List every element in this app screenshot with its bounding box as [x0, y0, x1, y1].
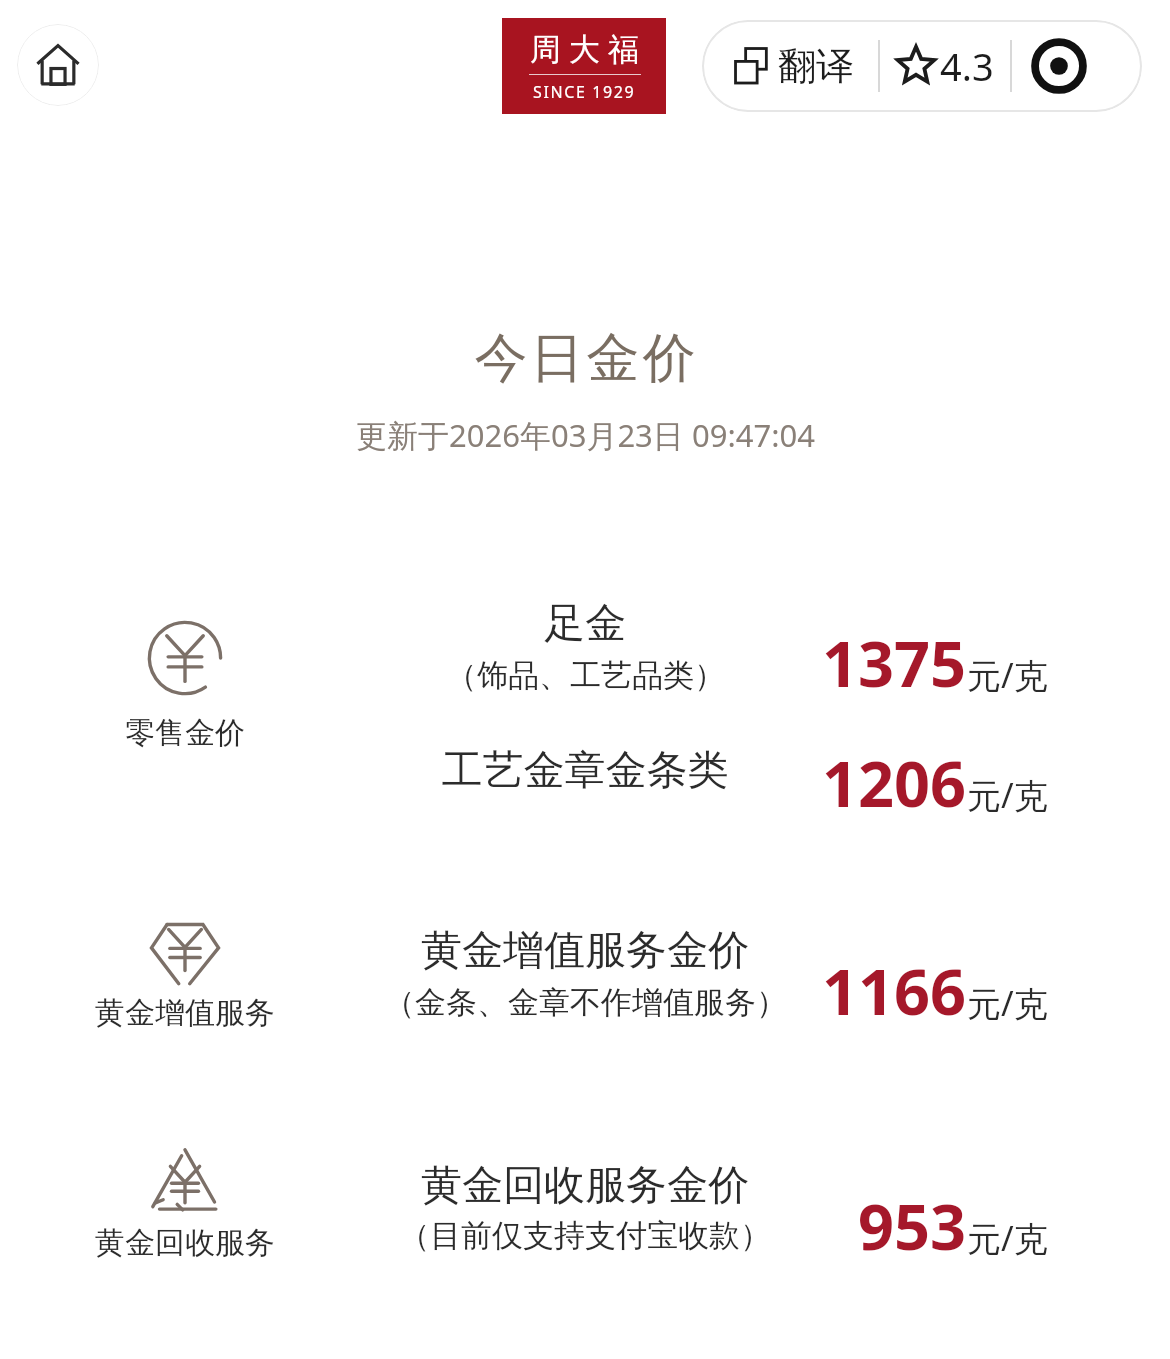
staticText: 更新于2026年03月23日 09:47:04 — [356, 414, 815, 456]
button[interactable]: 4.3 — [894, 38, 996, 94]
button[interactable]: 1375 — [708, 620, 1048, 706]
staticText: 元/克 — [967, 980, 1048, 1026]
staticText: （金条、金章不作增值服务） — [384, 983, 787, 1022]
staticText: 足金 — [544, 598, 626, 650]
staticText: 4.3 — [940, 40, 994, 92]
button[interactable]: Home — [17, 24, 99, 106]
staticText: 黄金增值服务金价 — [421, 925, 749, 977]
staticText: 元/克 — [967, 772, 1048, 818]
staticText: 今日金价 — [473, 325, 697, 392]
staticText: 元/克 — [967, 1215, 1048, 1261]
button[interactable]: 零售金价 — [75, 619, 295, 764]
button[interactable]: 黄金回收服务 — [75, 1142, 295, 1274]
staticText: （目前仅支持支付宝收款） — [399, 1216, 771, 1255]
staticText: （饰品、工艺品类） — [446, 656, 725, 695]
staticText: 翻译 — [778, 42, 854, 90]
staticText: 黄金回收服务 — [95, 1224, 275, 1262]
staticText: 1206 — [822, 740, 967, 826]
button[interactable]: 黄金增值服务 — [75, 912, 295, 1044]
button[interactable]: 1206 — [708, 740, 1048, 826]
staticText: 1375 — [822, 620, 967, 706]
button[interactable]: 1166 — [708, 948, 1048, 1034]
staticText: 1166 — [822, 948, 967, 1034]
staticText: 953 — [858, 1183, 967, 1269]
staticText: 黄金增值服务 — [95, 994, 275, 1032]
staticText: 周大福 — [526, 30, 643, 69]
staticText: SINCE 1929 — [533, 81, 636, 103]
button[interactable]: 周大福 — [502, 18, 666, 114]
staticText: 工艺金章金条类 — [360, 745, 810, 797]
staticText: 元/克 — [967, 652, 1048, 698]
button[interactable]: 翻译 — [726, 38, 858, 94]
button[interactable]: More options — [1030, 37, 1088, 95]
staticText: 零售金价 — [125, 714, 245, 752]
staticText: 黄金回收服务金价 — [421, 1160, 749, 1212]
button[interactable]: 953 — [708, 1183, 1048, 1269]
